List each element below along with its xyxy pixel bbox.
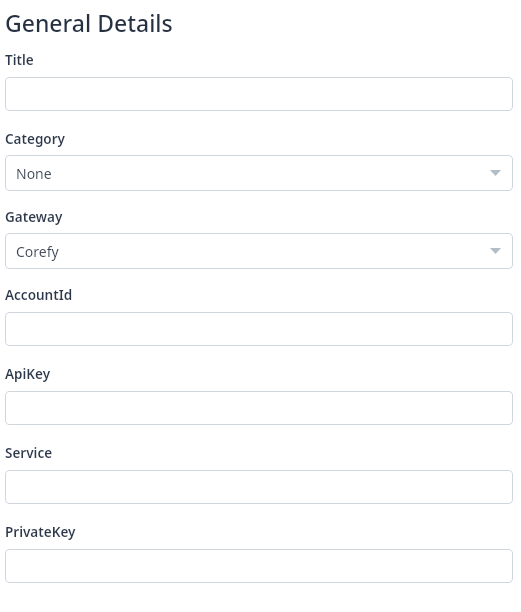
button[interactable]: Title [5,77,513,111]
staticText: General Details [5,7,173,38]
staticText: AccountId [5,286,73,304]
button[interactable]: ApiKey [5,391,513,425]
button[interactable]: AccountId [5,312,513,346]
staticText: Service [5,444,53,462]
staticText: Gateway [5,208,63,226]
staticText: Corefy [16,242,59,261]
staticText: Title [5,51,34,69]
staticText: None [16,164,52,183]
staticText: Category [5,130,65,148]
button[interactable]: Service [5,470,513,504]
staticText: PrivateKey [5,523,76,541]
button[interactable]: Corefy [5,233,513,269]
button[interactable]: None [5,155,513,191]
staticText: ApiKey [5,365,51,383]
button[interactable]: PrivateKey [5,549,513,583]
